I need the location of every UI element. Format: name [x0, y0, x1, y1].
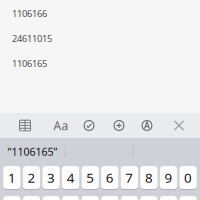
staticText: 3	[47, 169, 55, 186]
staticText: Aa	[53, 117, 68, 133]
staticText: “1106165”	[7, 144, 57, 159]
button[interactable]: @	[160, 196, 177, 200]
button[interactable]: :	[42, 196, 60, 200]
button[interactable]: &	[140, 196, 158, 200]
button[interactable]: 5	[81, 166, 99, 190]
button[interactable]: -	[3, 196, 21, 200]
button[interactable]: (	[81, 196, 99, 200]
button[interactable]: ;	[62, 196, 79, 200]
button[interactable]: 0	[179, 166, 197, 190]
button[interactable]: )	[101, 196, 118, 200]
button[interactable]: “1106165”	[0, 138, 65, 165]
button[interactable]: 6	[101, 166, 118, 190]
staticText: 8	[145, 169, 153, 186]
button[interactable]: 8	[140, 166, 158, 190]
button[interactable]: Text style	[135, 113, 159, 138]
staticText: 1106166	[12, 7, 47, 20]
button[interactable]: 2	[23, 166, 40, 190]
button[interactable]: $	[121, 196, 138, 200]
staticText: 6	[106, 169, 114, 186]
button[interactable]: Formula	[77, 113, 101, 138]
button[interactable]: 3	[42, 166, 60, 190]
staticText: 0	[184, 169, 192, 186]
staticText: 1106165	[12, 57, 47, 70]
staticText: 1	[8, 169, 16, 186]
button[interactable]: 9	[160, 166, 177, 190]
button[interactable]: 1	[3, 166, 21, 190]
button[interactable]: "	[179, 196, 197, 200]
staticText: 24611015	[12, 32, 52, 45]
button[interactable]: 4	[62, 166, 79, 190]
staticText: 5	[86, 169, 94, 186]
button[interactable]: /	[23, 196, 40, 200]
button[interactable]: Aa	[49, 113, 73, 138]
button[interactable]: Table	[13, 113, 37, 138]
staticText: 2	[27, 169, 35, 186]
staticText: 7	[125, 169, 133, 186]
button[interactable]: 7	[121, 166, 138, 190]
button[interactable]: Insert	[107, 113, 131, 138]
staticText: 4	[67, 169, 75, 186]
button[interactable]: Close	[167, 113, 191, 138]
staticText: 9	[164, 169, 172, 186]
